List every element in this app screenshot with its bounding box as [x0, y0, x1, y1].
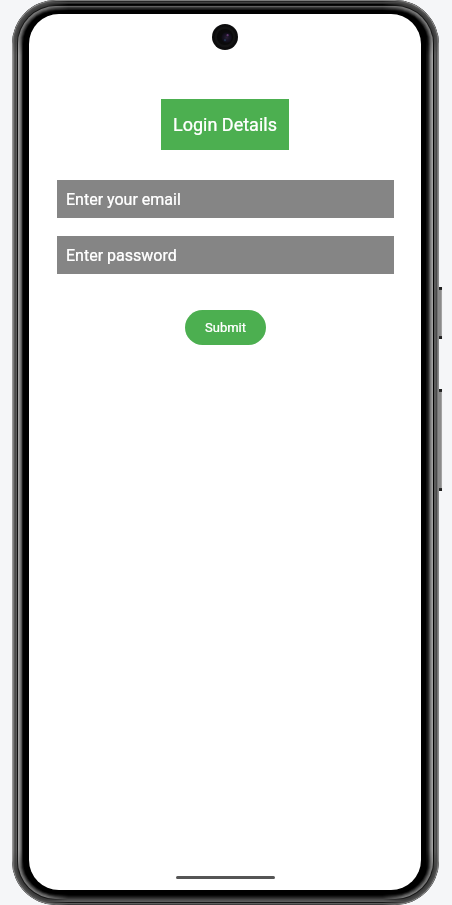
staticText: Enter password: [66, 246, 177, 265]
staticText: Submit: [205, 320, 246, 335]
button[interactable]: Enter your email: [57, 180, 394, 218]
button[interactable]: Submit: [185, 310, 266, 345]
button[interactable]: Hardware button: [439, 287, 442, 339]
other: Front camera: [212, 24, 238, 50]
button[interactable]: Login Details: [161, 99, 289, 150]
button[interactable]: Enter password: [57, 236, 394, 274]
staticText: Enter your email: [66, 190, 181, 209]
button[interactable]: Hardware button: [439, 389, 442, 491]
button[interactable]: Home gesture bar: [176, 876, 275, 879]
staticText: Login Details: [173, 114, 277, 135]
